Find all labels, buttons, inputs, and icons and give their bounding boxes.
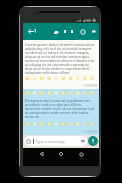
staticText: 10:34 PM bbox=[84, 84, 97, 88]
button[interactable]: Search bbox=[51, 25, 61, 38]
button[interactable]: Home bbox=[54, 148, 68, 160]
button[interactable]: Back bbox=[34, 148, 48, 160]
button[interactable]: Recent apps bbox=[74, 148, 88, 160]
staticText: Excepteur sint occaecat cupidatat non pr… bbox=[25, 98, 97, 119]
staticText: 10:36 PM bbox=[84, 130, 97, 134]
button[interactable]: Call bbox=[68, 25, 76, 38]
staticText: 1 bbox=[34, 28, 37, 35]
button[interactable]: Back bbox=[26, 25, 36, 38]
button[interactable]: Record voice message bbox=[88, 136, 98, 146]
button[interactable]: Lorem ipsum dolor sit amet consectetur a… bbox=[23, 40, 99, 89]
button[interactable]: Conversation title bbox=[34, 25, 64, 38]
button[interactable]: Video call bbox=[79, 25, 87, 38]
button[interactable]: Excepteur sint occaecat cupidatat non pr… bbox=[23, 89, 99, 135]
staticText: Type a message bbox=[35, 139, 66, 144]
button[interactable]: Type a message bbox=[24, 136, 87, 146]
staticText: Lorem ipsum dolor sit amet consectetur a… bbox=[25, 42, 97, 75]
button[interactable]: Attach bbox=[61, 25, 69, 38]
button[interactable]: More options bbox=[89, 25, 98, 38]
